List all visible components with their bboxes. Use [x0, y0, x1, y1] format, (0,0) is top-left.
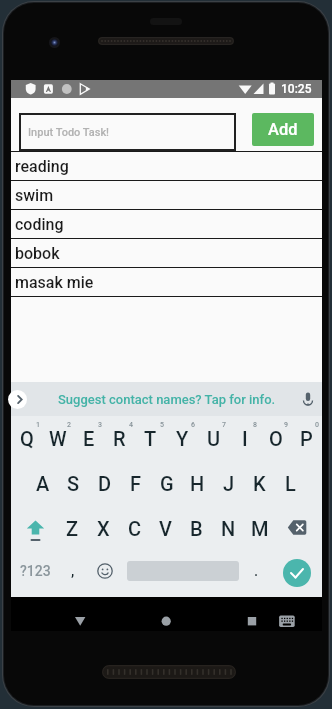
button[interactable]: N — [213, 513, 244, 544]
button[interactable]: K — [244, 468, 275, 499]
button[interactable]: S — [58, 468, 89, 499]
staticText: P — [300, 427, 313, 450]
button[interactable]: Recents — [241, 603, 263, 625]
button[interactable]: swim — [11, 181, 322, 209]
staticText: 2 — [67, 421, 71, 429]
staticText: bobok — [15, 244, 60, 263]
button[interactable]: F — [120, 468, 151, 499]
button[interactable]: P — [291, 423, 322, 454]
staticText: swim — [15, 186, 54, 205]
staticText: 6 — [191, 421, 195, 429]
button[interactable]: W — [42, 423, 73, 454]
button[interactable]: L — [275, 468, 306, 499]
staticText: A — [36, 472, 50, 495]
button[interactable]: Add — [252, 113, 314, 146]
button[interactable]: J — [213, 468, 244, 499]
staticText: Z — [66, 517, 79, 540]
button[interactable]: B — [181, 513, 212, 544]
button[interactable]: reading — [11, 152, 322, 180]
staticText: , — [71, 562, 75, 580]
staticText: J — [223, 472, 235, 495]
button[interactable]: V — [150, 513, 181, 544]
staticText: I — [242, 427, 248, 450]
staticText: X — [97, 517, 110, 540]
button[interactable]: masak mie — [11, 268, 322, 296]
button[interactable]: Backspace — [281, 514, 312, 545]
staticText: 3 — [98, 421, 102, 429]
button[interactable]: X — [88, 513, 119, 544]
button[interactable]: D — [89, 468, 120, 499]
staticText: 4 — [129, 421, 133, 429]
button[interactable]: Voice input — [298, 389, 318, 409]
staticText: masak mie — [15, 273, 94, 292]
button[interactable]: Suggest contact names? Tap for info. — [58, 392, 276, 407]
button[interactable]: C — [119, 513, 150, 544]
button[interactable]: R — [104, 423, 135, 454]
button[interactable]: Switch keyboard — [276, 603, 298, 625]
button[interactable]: ?123 — [20, 555, 51, 586]
staticText: coding — [15, 215, 64, 234]
staticText: 5 — [160, 421, 164, 429]
staticText: 7 — [222, 421, 226, 429]
staticText: 9 — [284, 421, 288, 429]
staticText: V — [159, 517, 172, 540]
button[interactable]: U — [198, 423, 229, 454]
button[interactable]: coding — [11, 210, 322, 238]
staticText: B — [190, 517, 203, 540]
staticText: Q — [20, 427, 34, 450]
staticText: 1 — [36, 421, 40, 429]
staticText: T — [144, 427, 157, 450]
staticText: Input Todo Task! — [28, 126, 110, 139]
staticText: L — [285, 472, 296, 495]
staticText: ?123 — [20, 563, 51, 579]
button[interactable]: , — [57, 555, 88, 586]
staticText: S — [67, 472, 80, 495]
staticText: C — [128, 517, 142, 540]
staticText: 10:25 — [281, 82, 312, 96]
staticText: H — [190, 472, 205, 495]
button[interactable]: M — [244, 513, 275, 544]
staticText: D — [98, 472, 112, 495]
button[interactable]: bobok — [11, 239, 322, 267]
staticText: 8 — [253, 421, 257, 429]
staticText: N — [221, 517, 236, 540]
button[interactable]: Shift — [20, 514, 51, 545]
staticText: U — [207, 427, 221, 450]
staticText: . — [254, 562, 259, 580]
staticText: Add — [268, 120, 298, 139]
staticText: K — [253, 472, 266, 495]
button[interactable]: Y — [167, 423, 198, 454]
button[interactable]: Back — [69, 603, 91, 625]
button[interactable]: H — [182, 468, 213, 499]
staticText: F — [130, 472, 142, 495]
button[interactable]: Home — [155, 603, 177, 625]
staticText: reading — [15, 157, 69, 176]
staticText: W — [49, 427, 67, 450]
staticText: O — [269, 427, 283, 450]
button[interactable]: A — [27, 468, 58, 499]
button[interactable]: Q — [11, 423, 42, 454]
staticText: E — [83, 427, 95, 450]
button[interactable]: E — [73, 423, 104, 454]
staticText: G — [160, 472, 174, 495]
button[interactable]: Expand suggestions — [8, 390, 27, 409]
button[interactable]: Enter — [283, 559, 311, 587]
staticText: Y — [176, 427, 189, 450]
button[interactable]: . — [241, 555, 272, 586]
staticText: 0 — [315, 421, 319, 429]
button[interactable]: Input Todo Task! — [19, 113, 236, 151]
button[interactable]: G — [151, 468, 182, 499]
button[interactable]: T — [135, 423, 166, 454]
button[interactable]: Z — [57, 513, 88, 544]
button[interactable]: O — [260, 423, 291, 454]
button[interactable]: Emoji — [97, 563, 113, 579]
button[interactable]: I — [229, 423, 260, 454]
staticText: R — [113, 427, 126, 450]
staticText: M — [251, 517, 269, 540]
